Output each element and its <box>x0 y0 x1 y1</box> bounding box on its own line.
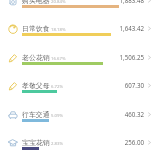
staticText: 2.83% <box>51 140 64 146</box>
staticText: 1,643.42 <box>99 24 144 32</box>
staticText: 1,506.25 <box>99 53 144 61</box>
button[interactable]: 日常饮食 <box>0 20 160 49</box>
staticText: 607.30 <box>99 81 144 89</box>
staticText: 460.32 <box>99 110 144 118</box>
staticText: 老公花销 <box>22 53 50 62</box>
button[interactable]: 老公花销 <box>0 49 160 78</box>
staticText: 孝敬父母 <box>22 81 50 90</box>
staticText: 购买电器 <box>22 0 50 5</box>
staticText: 宝宝花销 <box>22 138 50 147</box>
staticText: 256.00 <box>99 138 144 146</box>
button[interactable]: 孝敬父母 <box>0 77 160 106</box>
staticText: 5.09% <box>51 112 64 118</box>
staticText: 6.72% <box>51 83 64 89</box>
staticText: 20.84% <box>51 0 66 4</box>
button[interactable]: 行车交通 <box>0 106 160 135</box>
staticText: 行车交通 <box>22 110 50 119</box>
staticText: 1,883.48 <box>99 0 144 4</box>
staticText: 16.67% <box>51 55 66 61</box>
staticText: 日常饮食 <box>22 24 50 33</box>
button[interactable]: 宝宝花销 <box>0 134 160 160</box>
staticText: 18.18% <box>51 26 66 32</box>
button[interactable]: 购买电器 <box>0 0 160 21</box>
